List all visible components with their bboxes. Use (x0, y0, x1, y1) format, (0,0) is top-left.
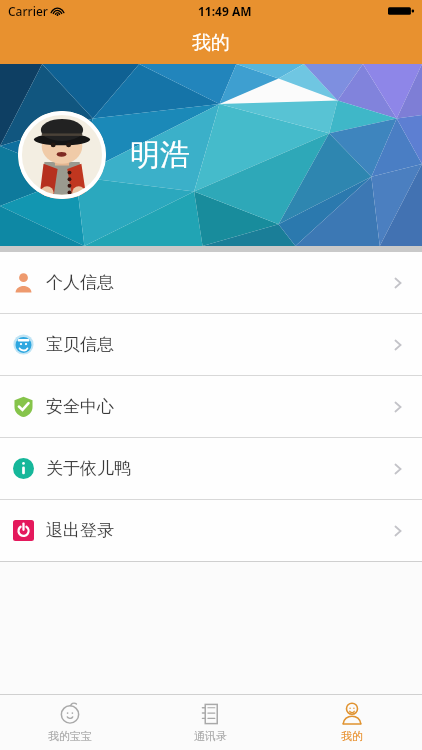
staticText: 个人信息 (46, 272, 114, 293)
button[interactable]: 宝贝信息 (0, 314, 422, 375)
staticText: 我的 (192, 31, 230, 55)
button[interactable]: 关于依儿鸭 (0, 438, 422, 499)
staticText: 宝贝信息 (46, 334, 114, 355)
button[interactable]: 安全中心 (0, 376, 422, 437)
button[interactable]: 个人信息 (0, 252, 422, 313)
staticText: Carrier (8, 3, 48, 19)
staticText: 明浩 (130, 136, 190, 174)
button[interactable]: 通讯录 (140, 695, 281, 750)
button[interactable]: Profile photo (18, 111, 106, 199)
button[interactable]: 我的 (281, 695, 422, 750)
staticText: 通讯录 (194, 729, 227, 743)
staticText: 退出登录 (46, 520, 114, 541)
staticText: 11:49 AM (198, 3, 252, 19)
staticText: 关于依儿鸭 (46, 458, 131, 479)
button[interactable]: 退出登录 (0, 500, 422, 561)
button[interactable]: 我的宝宝 (0, 695, 140, 750)
staticText: 安全中心 (46, 396, 114, 417)
staticText: 我的宝宝 (48, 729, 92, 743)
staticText: 我的 (341, 729, 363, 743)
